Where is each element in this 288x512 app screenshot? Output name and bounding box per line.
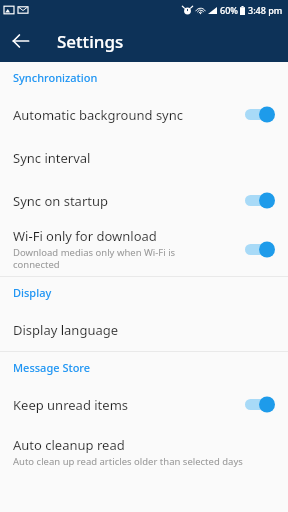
button[interactable]: Back — [0, 20, 42, 62]
staticText: Auto cleanup read — [13, 436, 125, 454]
button[interactable]: Automatic background sync — [0, 93, 288, 136]
button[interactable]: Wi-Fi only for download — [0, 222, 288, 276]
staticText: Download medias only when Wi-Fi is conne… — [13, 246, 176, 271]
staticText: Wi-Fi only for download — [13, 227, 157, 245]
staticText: Auto clean up read articles older than s… — [13, 455, 243, 468]
staticText: Settings — [57, 30, 124, 53]
staticText: Keep unread items — [13, 396, 129, 414]
staticText: Display — [13, 285, 52, 300]
staticText: 60% — [220, 4, 238, 16]
button[interactable]: Display language — [0, 308, 288, 351]
button[interactable]: Keep unread items — [0, 383, 288, 426]
staticText: Automatic background sync — [13, 106, 184, 124]
staticText: Synchronization — [13, 70, 98, 85]
staticText: Message Store — [13, 360, 91, 375]
button[interactable]: Auto cleanup read — [0, 426, 288, 478]
button[interactable]: Sync interval — [0, 136, 288, 179]
staticText: 3:48 pm — [248, 4, 283, 16]
button[interactable]: Sync on startup — [0, 179, 288, 222]
staticText: Sync interval — [13, 149, 91, 167]
staticText: Display language — [13, 321, 119, 339]
staticText: Sync on startup — [13, 192, 109, 210]
